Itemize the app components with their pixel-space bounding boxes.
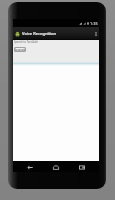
staticText: Speech to Text Auth — [14, 40, 39, 44]
button[interactable]: Back — [21, 163, 39, 172]
staticText: 1:35 — [90, 21, 98, 26]
button[interactable]: Speak — [14, 47, 26, 52]
button[interactable]: Recent apps — [73, 163, 91, 172]
staticText: Voice Recognition — [22, 31, 57, 36]
button[interactable]: More options — [92, 27, 99, 40]
button[interactable]: Home — [47, 163, 65, 172]
staticText: Speak — [14, 47, 26, 52]
